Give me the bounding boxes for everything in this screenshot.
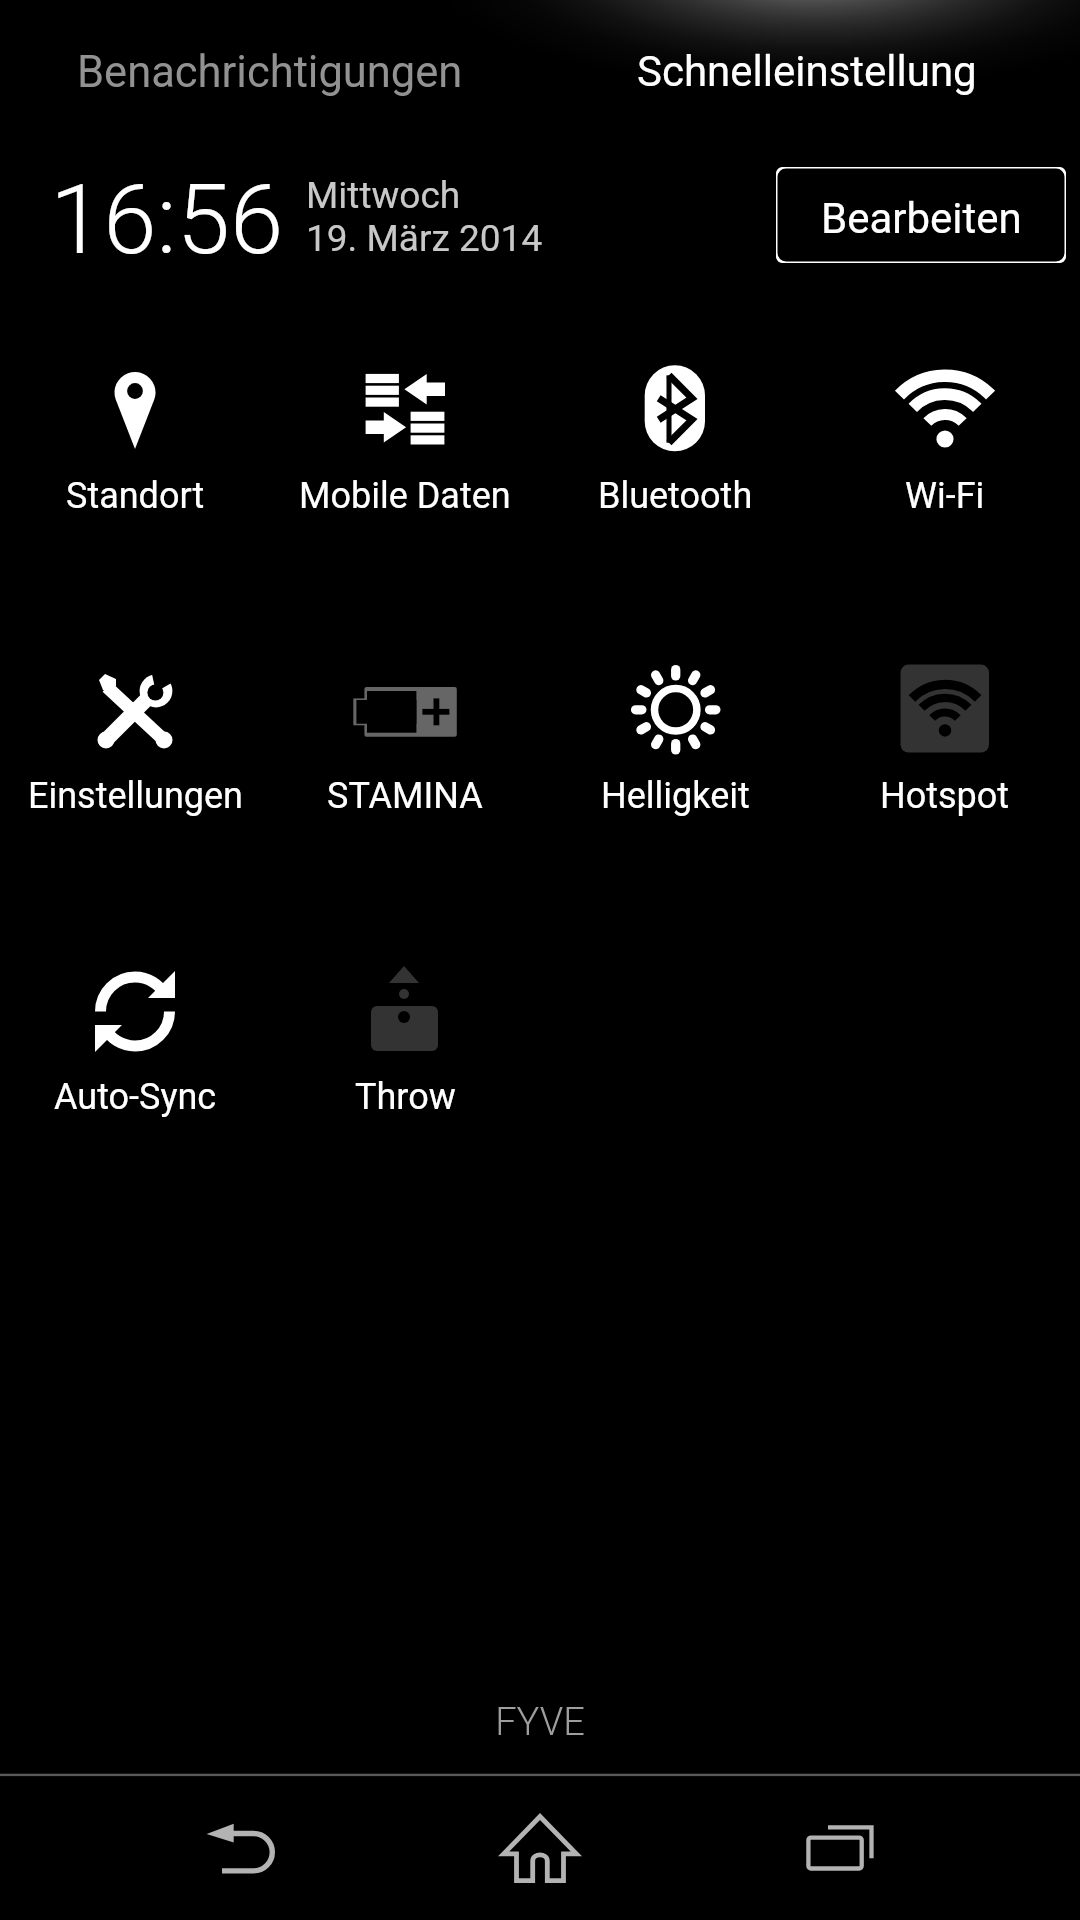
staticText: Benachrichtigungen [77, 47, 463, 98]
staticText: FYVE [495, 1700, 585, 1745]
staticText: Standort [66, 475, 205, 517]
staticText: Wi-Fi [905, 475, 985, 517]
staticText: Bluetooth [598, 475, 753, 517]
staticText: Throw [355, 1076, 456, 1118]
button[interactable]: Standort [0, 305, 270, 515]
button[interactable]: Recent apps [780, 1783, 900, 1903]
button[interactable]: Bearbeiten [776, 167, 1066, 263]
staticText: STAMINA [327, 775, 483, 817]
staticText: Mobile Daten [299, 475, 511, 517]
button[interactable]: Helligkeit [540, 605, 810, 815]
button[interactable]: Home [480, 1783, 600, 1903]
button[interactable]: Throw [270, 906, 540, 1116]
button[interactable]: Mobile Daten [270, 305, 540, 515]
staticText: 16:56 [50, 164, 284, 277]
button[interactable]: Schnelleinstellung [540, 0, 1080, 130]
button[interactable]: Einstellungen [0, 605, 270, 815]
button[interactable]: STAMINA [270, 605, 540, 815]
staticText: Schnelleinstellung [637, 47, 977, 96]
staticText: Bearbeiten [821, 194, 1022, 243]
button[interactable]: Auto-Sync [0, 906, 270, 1116]
button[interactable]: Wi-Fi [810, 305, 1080, 515]
button[interactable]: Hotspot [810, 605, 1080, 815]
staticText: Einstellungen [28, 775, 243, 817]
button[interactable]: Back [183, 1783, 303, 1903]
staticText: Hotspot [880, 775, 1010, 817]
staticText: Auto-Sync [54, 1076, 217, 1118]
staticText: Helligkeit [601, 775, 750, 817]
button[interactable]: Benachrichtigungen [0, 0, 540, 130]
staticText: Mittwoch [306, 174, 461, 217]
staticText: 19. März 2014 [306, 217, 543, 260]
button[interactable]: Bluetooth [540, 305, 810, 515]
